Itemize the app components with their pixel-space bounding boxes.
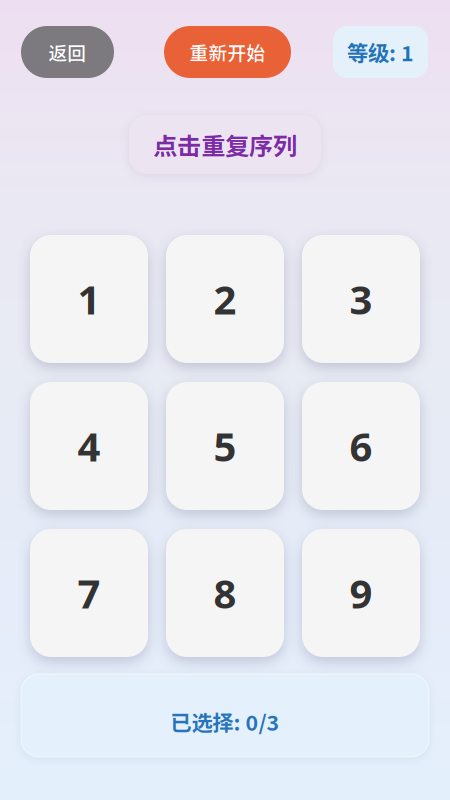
staticText: 7 (77, 566, 100, 619)
staticText: 等级: 1 (347, 37, 414, 67)
button[interactable]: 2 (166, 235, 284, 363)
staticText: 2 (213, 272, 236, 325)
staticText: 1 (77, 272, 100, 325)
staticText: 9 (349, 566, 372, 619)
staticText: 4 (77, 419, 100, 472)
button[interactable]: 4 (30, 382, 148, 510)
staticText: 重新开始 (189, 38, 265, 65)
button[interactable]: 8 (166, 529, 284, 657)
button[interactable]: 3 (302, 235, 420, 363)
staticText: 8 (213, 566, 236, 619)
button[interactable]: 6 (302, 382, 420, 510)
button[interactable]: 重新开始 (164, 26, 291, 78)
button[interactable]: 1 (30, 235, 148, 363)
staticText: 点击重复序列 (153, 127, 297, 162)
staticText: 3 (349, 272, 372, 325)
button[interactable]: 9 (302, 529, 420, 657)
button[interactable]: 7 (30, 529, 148, 657)
staticText: 6 (349, 419, 372, 472)
staticText: 5 (213, 419, 236, 472)
button[interactable]: 返回 (21, 26, 114, 78)
staticText: 已选择: 0/3 (170, 706, 279, 737)
staticText: 返回 (48, 38, 86, 65)
button[interactable]: 5 (166, 382, 284, 510)
